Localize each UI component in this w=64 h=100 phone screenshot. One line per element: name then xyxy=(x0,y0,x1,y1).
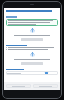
button[interactable]: Next xyxy=(33,84,58,88)
button[interactable]: Upload file xyxy=(6,28,58,41)
button[interactable]: Back xyxy=(6,84,31,88)
button[interactable]: Select option xyxy=(6,71,58,75)
button[interactable]: Upload file xyxy=(6,52,58,65)
